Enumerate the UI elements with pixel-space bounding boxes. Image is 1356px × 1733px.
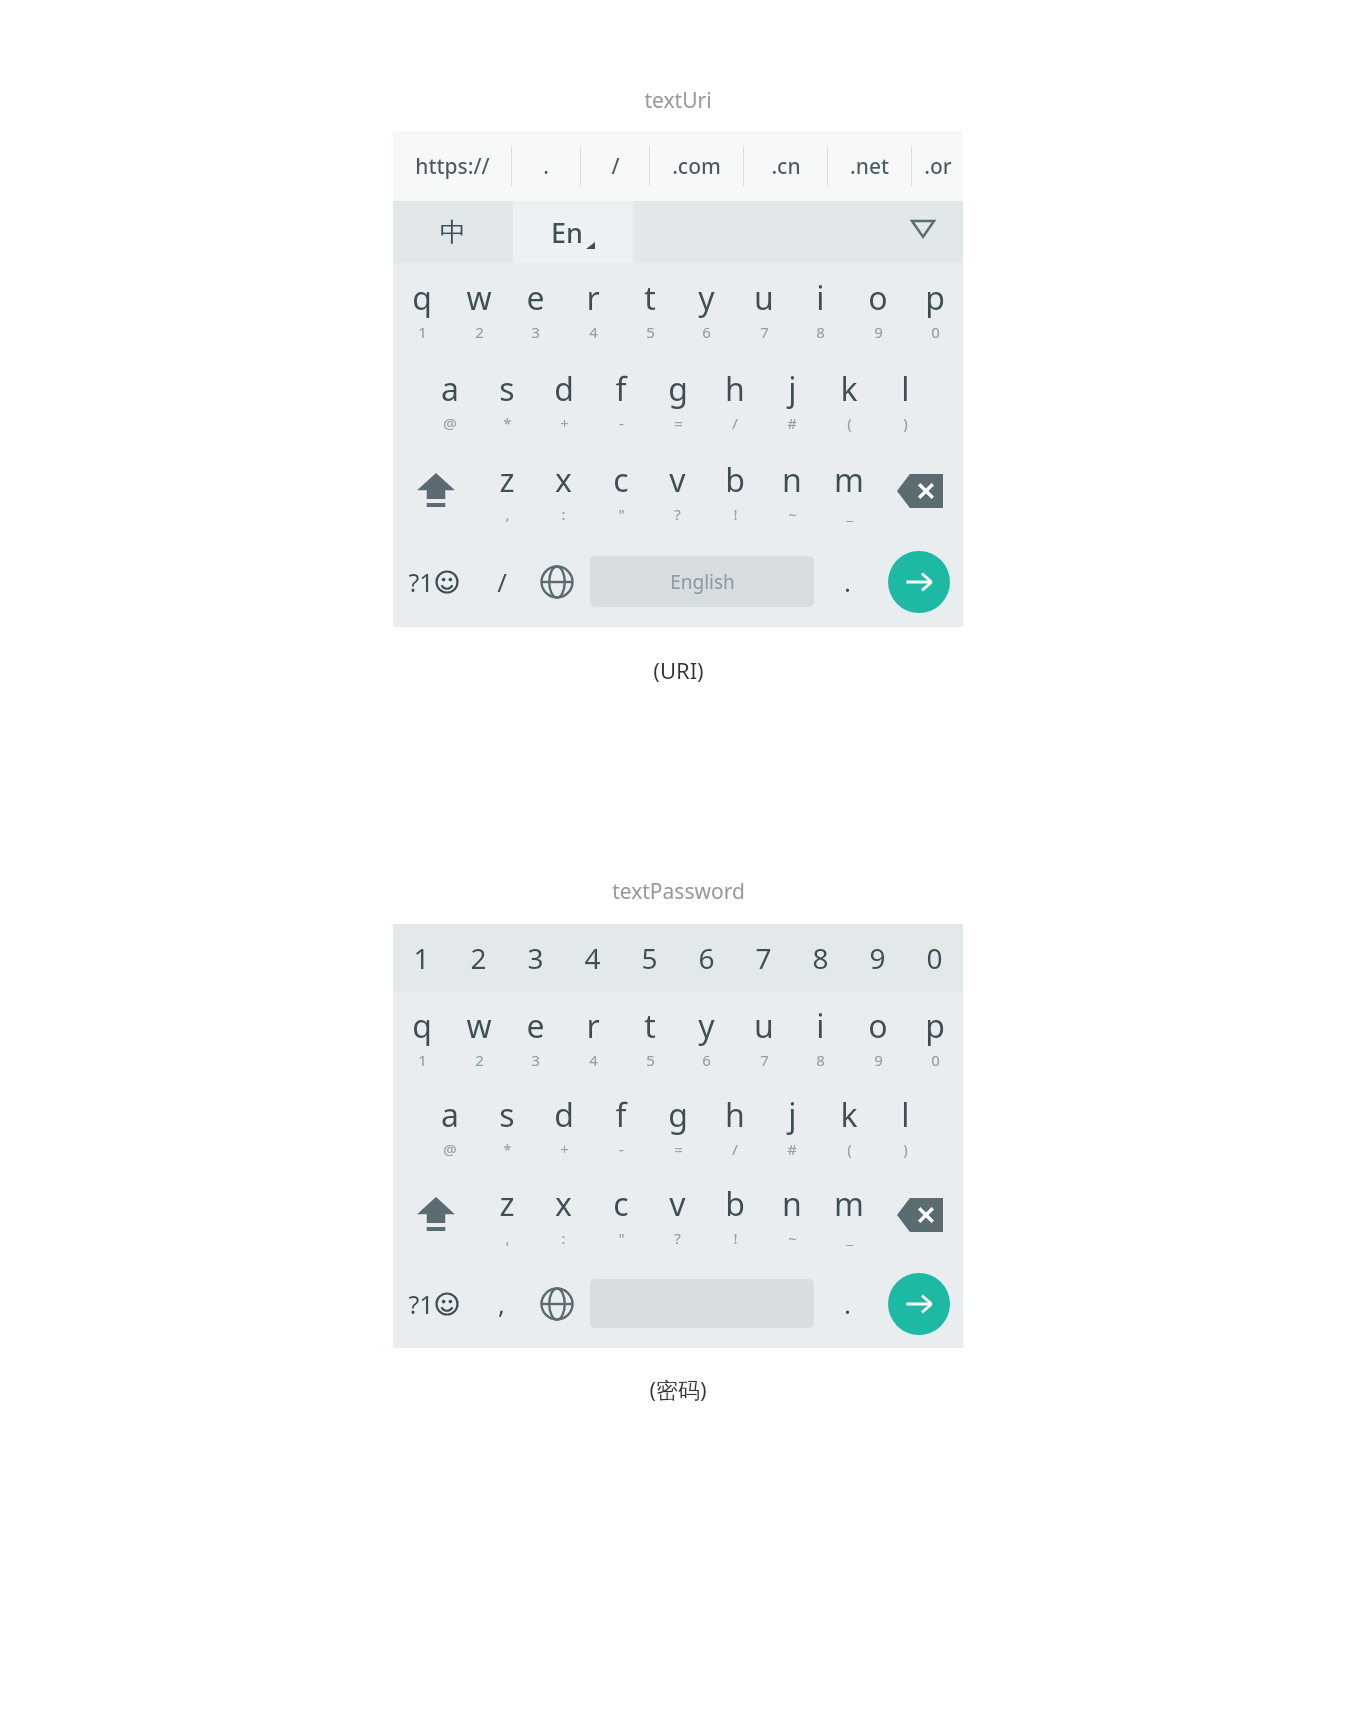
button[interactable]: n bbox=[763, 445, 820, 536]
button[interactable]: v bbox=[649, 1170, 706, 1259]
button[interactable]: En bbox=[513, 201, 633, 263]
button[interactable]: . bbox=[820, 536, 875, 627]
button[interactable]: h bbox=[706, 1081, 763, 1170]
button[interactable]: q bbox=[393, 263, 450, 354]
staticText: 3 bbox=[527, 939, 544, 977]
button[interactable]: j bbox=[763, 1081, 820, 1170]
button[interactable]: Backspace bbox=[877, 445, 963, 536]
button[interactable]: Switch language bbox=[529, 536, 584, 627]
button[interactable]: 2 bbox=[450, 924, 507, 992]
button[interactable]: r bbox=[564, 992, 621, 1081]
button[interactable]: c bbox=[592, 445, 649, 536]
staticText: i bbox=[816, 1004, 825, 1048]
button[interactable]: x bbox=[535, 1170, 592, 1259]
button[interactable]: . bbox=[820, 1259, 875, 1348]
button[interactable]: Go bbox=[888, 551, 950, 613]
button[interactable]: 4 bbox=[564, 924, 621, 992]
staticText: b bbox=[725, 1182, 745, 1226]
button[interactable]: m bbox=[820, 445, 877, 536]
button[interactable]: j bbox=[763, 354, 820, 445]
button[interactable]: x bbox=[535, 445, 592, 536]
staticText: h bbox=[725, 1093, 745, 1137]
staticText: = bbox=[674, 413, 683, 433]
staticText: a bbox=[441, 367, 459, 411]
button[interactable]: / bbox=[474, 536, 529, 627]
button[interactable]: Collapse keyboard bbox=[883, 201, 963, 263]
button[interactable]: English bbox=[590, 556, 814, 607]
button[interactable]: f bbox=[592, 1081, 649, 1170]
button[interactable]: .cn bbox=[744, 131, 827, 201]
button[interactable]: , bbox=[474, 1259, 529, 1348]
button[interactable]: i bbox=[792, 992, 849, 1081]
button[interactable]: e bbox=[507, 263, 564, 354]
button[interactable]: 中 bbox=[393, 201, 513, 263]
button[interactable]: w bbox=[450, 263, 507, 354]
button[interactable]: h bbox=[706, 354, 763, 445]
staticText: " bbox=[618, 1228, 625, 1248]
button[interactable]: .or bbox=[912, 131, 963, 201]
button[interactable]: 7 bbox=[735, 924, 792, 992]
button[interactable]: s bbox=[478, 354, 535, 445]
staticText: 2 bbox=[470, 939, 487, 977]
button[interactable]: b bbox=[706, 445, 763, 536]
button[interactable]: 6 bbox=[678, 924, 735, 992]
button[interactable]: 5 bbox=[621, 924, 678, 992]
button[interactable]: Shift bbox=[393, 1170, 478, 1259]
button[interactable]: 0 bbox=[906, 924, 963, 992]
button[interactable]: Go bbox=[888, 1273, 950, 1335]
button[interactable]: y bbox=[678, 263, 735, 354]
button[interactable]: d bbox=[535, 354, 592, 445]
button[interactable]: ?1 bbox=[393, 536, 474, 627]
button[interactable]: u bbox=[735, 263, 792, 354]
button[interactable]: ?1 bbox=[393, 1259, 474, 1348]
button[interactable]: y bbox=[678, 992, 735, 1081]
button[interactable]: f bbox=[592, 354, 649, 445]
button[interactable]: q bbox=[393, 992, 450, 1081]
button[interactable]: m bbox=[820, 1170, 877, 1259]
button[interactable]: / bbox=[581, 131, 649, 201]
button[interactable]: e bbox=[507, 992, 564, 1081]
button[interactable]: o bbox=[849, 263, 906, 354]
staticText: u bbox=[754, 276, 774, 320]
button[interactable]: a bbox=[421, 1081, 478, 1170]
staticText: ( bbox=[847, 413, 852, 433]
button[interactable]: z bbox=[478, 445, 535, 536]
button[interactable]: u bbox=[735, 992, 792, 1081]
button[interactable]: Shift bbox=[393, 445, 478, 536]
button[interactable]: 9 bbox=[849, 924, 906, 992]
button[interactable]: p bbox=[906, 263, 963, 354]
button[interactable]: .net bbox=[828, 131, 911, 201]
staticText: : bbox=[561, 504, 566, 524]
button[interactable]: k bbox=[820, 1081, 877, 1170]
button[interactable]: g bbox=[649, 1081, 706, 1170]
button[interactable]: z bbox=[478, 1170, 535, 1259]
button[interactable]: Switch language bbox=[529, 1259, 584, 1348]
button[interactable]: b bbox=[706, 1170, 763, 1259]
button[interactable]: r bbox=[564, 263, 621, 354]
button[interactable]: g bbox=[649, 354, 706, 445]
button[interactable]: 3 bbox=[507, 924, 564, 992]
button[interactable]: 8 bbox=[792, 924, 849, 992]
button[interactable]: s bbox=[478, 1081, 535, 1170]
button[interactable]: 1 bbox=[393, 924, 450, 992]
button[interactable]: .com bbox=[650, 131, 743, 201]
button[interactable]: Backspace bbox=[877, 1170, 963, 1259]
button[interactable]: a bbox=[421, 354, 478, 445]
button[interactable]: w bbox=[450, 992, 507, 1081]
button[interactable]: c bbox=[592, 1170, 649, 1259]
button[interactable]: . bbox=[512, 131, 580, 201]
button[interactable]: o bbox=[849, 992, 906, 1081]
button[interactable]: d bbox=[535, 1081, 592, 1170]
button[interactable]: v bbox=[649, 445, 706, 536]
staticText: 5 bbox=[646, 1050, 655, 1070]
button[interactable]: k bbox=[820, 354, 877, 445]
button[interactable]: i bbox=[792, 263, 849, 354]
button[interactable]: p bbox=[906, 992, 963, 1081]
button[interactable]: l bbox=[877, 354, 934, 445]
button[interactable]: n bbox=[763, 1170, 820, 1259]
button[interactable]: https:// bbox=[393, 131, 511, 201]
button[interactable]: l bbox=[877, 1081, 934, 1170]
button[interactable]: t bbox=[621, 263, 678, 354]
button[interactable]: t bbox=[621, 992, 678, 1081]
